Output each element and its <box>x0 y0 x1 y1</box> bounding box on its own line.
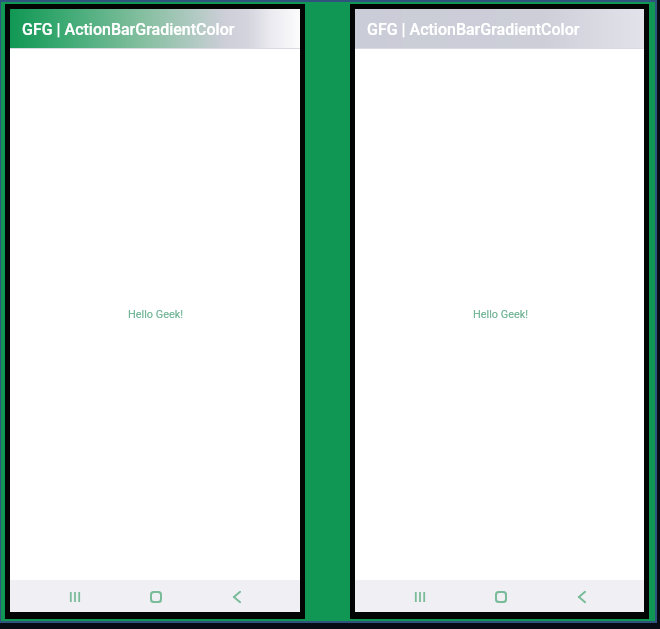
staticText: Hello Geek! <box>128 308 184 321</box>
button[interactable]: Home <box>460 581 541 613</box>
button[interactable]: Recent apps <box>34 581 115 613</box>
staticText: GFG | ActionBarGradientColor <box>367 20 580 39</box>
button[interactable]: Back <box>541 581 622 613</box>
button[interactable]: Back <box>196 581 277 613</box>
staticText: GFG | ActionBarGradientColor <box>22 20 235 39</box>
button[interactable]: Home <box>115 581 196 613</box>
staticText: Hello Geek! <box>473 308 529 321</box>
button[interactable]: Recent apps <box>379 581 460 613</box>
